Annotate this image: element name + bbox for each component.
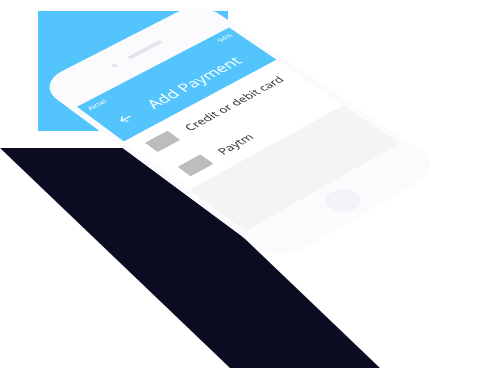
staticText: Credit or debit card (180, 73, 288, 133)
staticText: Add Payment (141, 53, 247, 112)
staticText: Airtel (84, 97, 109, 112)
staticText: 94% (214, 31, 235, 43)
button[interactable]: Paytm (157, 82, 343, 190)
staticText: Paytm (213, 131, 258, 157)
button[interactable]: Credit or debit card (124, 60, 309, 165)
button[interactable]: Back (108, 107, 144, 130)
